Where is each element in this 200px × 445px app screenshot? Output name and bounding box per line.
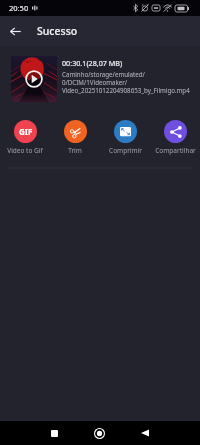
staticText: Compartilhar: [155, 146, 196, 155]
staticText: 0/DCIM/1Videomaker/: [62, 78, 128, 86]
staticText: GIF: [19, 126, 33, 137]
button[interactable]: Play video: [11, 56, 57, 102]
staticText: Sucesso: [37, 24, 78, 38]
staticText: 00:30.1(28,07 MB): [62, 58, 123, 68]
staticText: Comprimir: [109, 146, 142, 155]
button[interactable]: Home: [87, 421, 111, 445]
staticText: 20:50: [9, 3, 29, 13]
staticText: Caminho/storage/emulated/: [62, 70, 145, 78]
button[interactable]: Trim: [50, 120, 100, 155]
button[interactable]: Compartilhar: [150, 120, 200, 155]
button[interactable]: Back: [133, 421, 157, 445]
staticText: Video_20251012204908653_by_Filmigo.mp4: [62, 86, 190, 94]
button[interactable]: Comprimir: [100, 120, 150, 155]
button[interactable]: Recents: [42, 421, 66, 445]
staticText: Trim: [68, 146, 82, 155]
staticText: Video to Gif: [7, 146, 43, 155]
button[interactable]: GIF: [0, 120, 50, 155]
button[interactable]: Back: [0, 16, 30, 46]
